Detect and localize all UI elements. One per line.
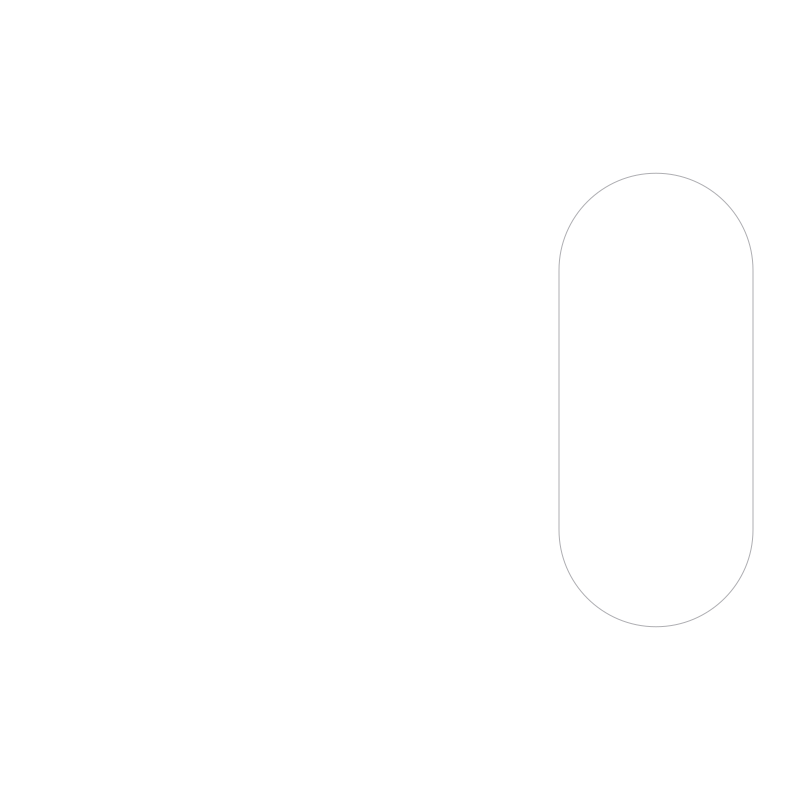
button[interactable]: Capsule button (559, 173, 753, 627)
